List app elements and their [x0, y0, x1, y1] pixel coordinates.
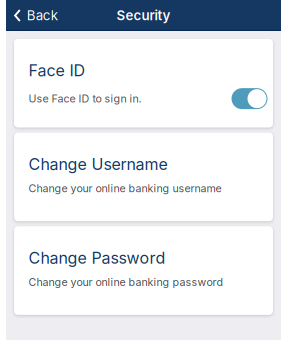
button[interactable]: Back: [6, 0, 66, 31]
staticText: Change Username: [28, 154, 167, 174]
button[interactable]: Change Username: [14, 132, 273, 221]
button[interactable]: Change Password: [14, 226, 273, 315]
staticText: Face ID: [28, 61, 85, 80]
staticText: Back: [27, 7, 58, 23]
staticText: Change your online banking username: [28, 182, 221, 195]
staticText: Security: [116, 7, 170, 23]
button[interactable]: Face ID: [14, 39, 273, 127]
staticText: Use Face ID to sign in.: [28, 92, 141, 105]
staticText: Change your online banking password: [28, 276, 223, 288]
staticText: Change Password: [28, 248, 165, 268]
